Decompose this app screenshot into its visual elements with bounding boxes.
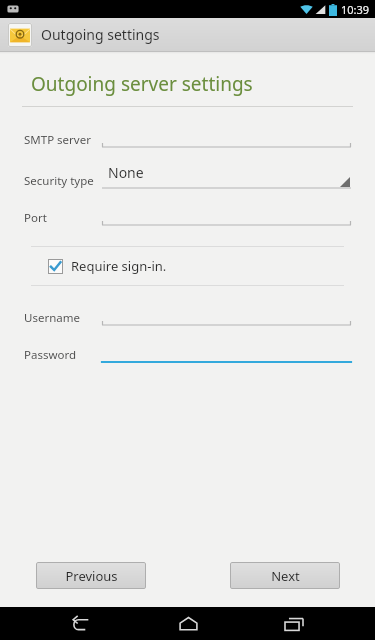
button[interactable]: SMTP server bbox=[24, 126, 351, 148]
staticText: Username bbox=[24, 310, 96, 326]
staticText: Next bbox=[271, 567, 300, 585]
button[interactable]: Security type bbox=[24, 163, 351, 189]
staticText: SMTP server bbox=[24, 132, 96, 148]
staticText: Outgoing server settings bbox=[31, 71, 253, 97]
staticText: Outgoing settings bbox=[41, 25, 160, 44]
button[interactable]: Recent apps bbox=[268, 607, 320, 640]
staticText: Security type bbox=[24, 173, 96, 189]
button[interactable]: Previous bbox=[36, 562, 146, 589]
staticText: Port bbox=[24, 210, 96, 226]
staticText: Require sign-in. bbox=[71, 257, 167, 275]
button[interactable]: Next bbox=[230, 562, 340, 589]
staticText: Previous bbox=[65, 567, 118, 585]
staticText: None bbox=[108, 163, 144, 182]
button[interactable]: Back bbox=[55, 607, 107, 640]
other: Email account bbox=[8, 23, 32, 47]
button[interactable]: Password bbox=[24, 341, 351, 363]
button[interactable]: Home bbox=[162, 607, 214, 640]
button[interactable]: Username bbox=[24, 304, 351, 326]
staticText: 10:39 bbox=[341, 2, 370, 17]
button[interactable]: Email account bbox=[0, 18, 375, 51]
button[interactable]: Require sign-in. bbox=[0, 247, 375, 285]
staticText: Password bbox=[24, 347, 96, 363]
button[interactable]: Port bbox=[24, 204, 351, 226]
